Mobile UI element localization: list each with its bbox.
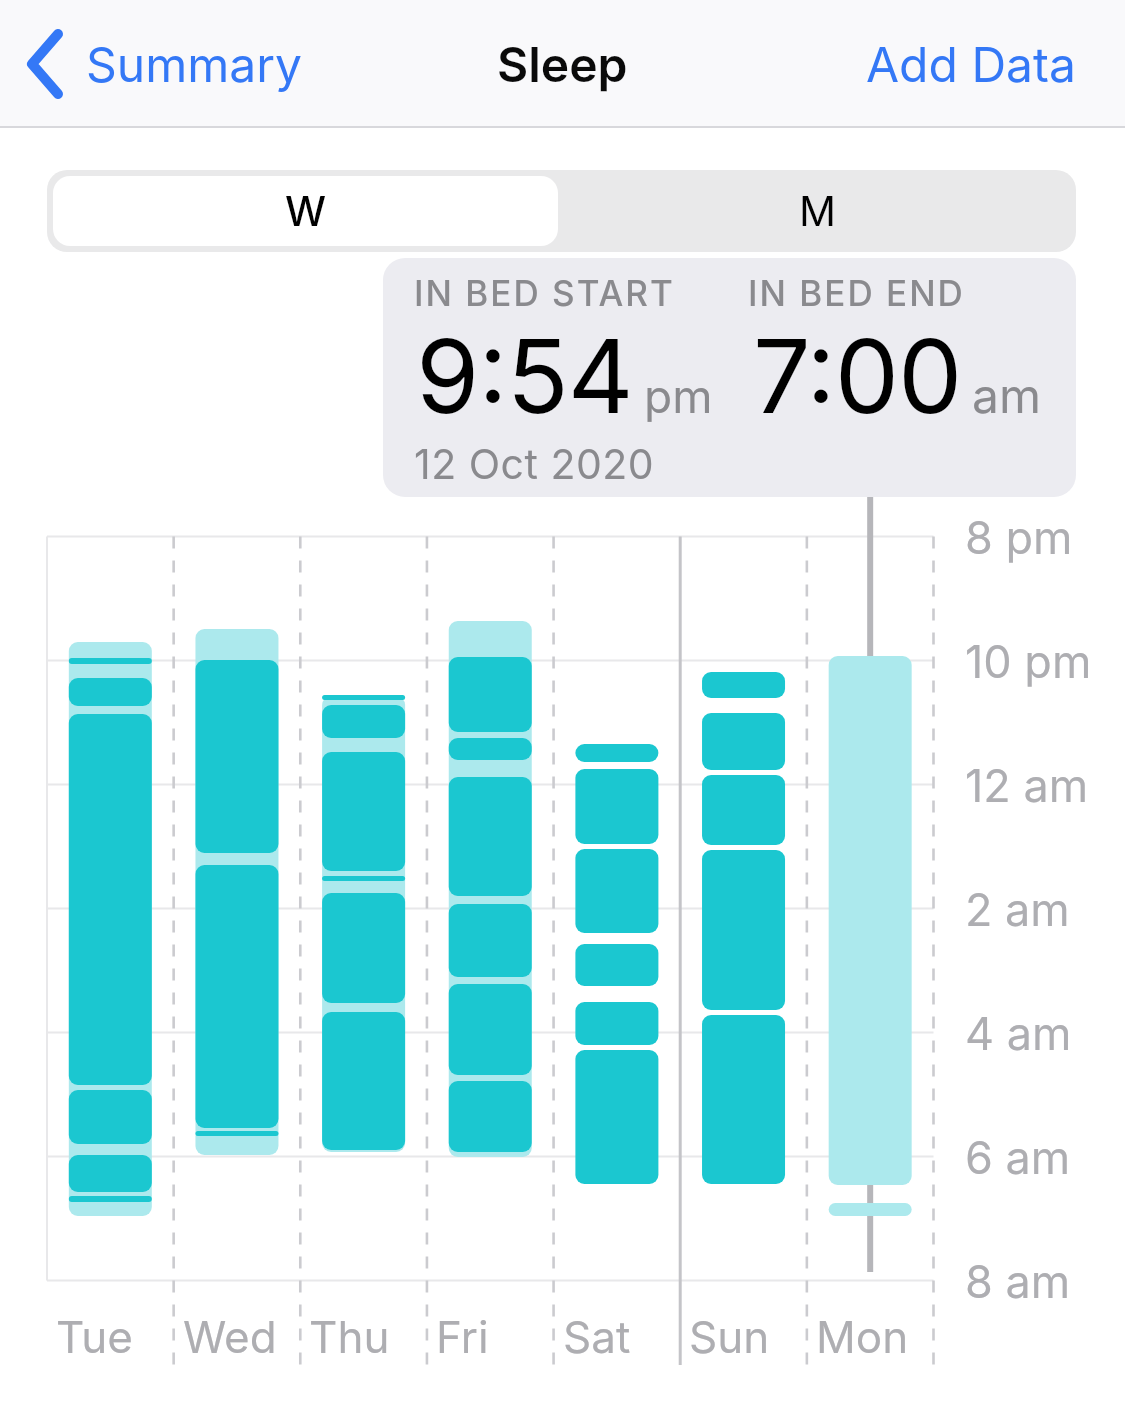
staticText: 8 am [965, 1254, 1071, 1308]
staticText: Sat [563, 1310, 631, 1363]
staticText: Sleep [497, 35, 628, 93]
staticText: M [799, 186, 837, 236]
button[interactable]: Add Data [866, 35, 1076, 93]
staticText: Wed [183, 1310, 277, 1363]
staticText: Tue [56, 1310, 133, 1363]
staticText: 4 am [965, 1006, 1072, 1060]
staticText: W [285, 186, 327, 236]
staticText: IN BED START [414, 272, 675, 314]
staticText: 8 pm [965, 510, 1073, 564]
staticText: 9:54 [416, 314, 633, 437]
staticText: Thu [309, 1310, 390, 1363]
staticText: pm [644, 368, 713, 424]
staticText: 6 am [965, 1130, 1071, 1184]
staticText: 2 am [965, 882, 1070, 936]
staticText: am [972, 366, 1041, 424]
button[interactable]: M [560, 170, 1076, 252]
staticText: 12 am [965, 758, 1089, 812]
button[interactable]: Summary [24, 26, 314, 102]
staticText: Summary [86, 35, 303, 93]
staticText: 7:00 [753, 314, 962, 437]
staticText: 12 Oct 2020 [414, 439, 655, 489]
button[interactable]: W [53, 176, 558, 246]
staticText: Sun [689, 1310, 770, 1363]
staticText: IN BED END [748, 272, 965, 314]
staticText: 10 pm [965, 634, 1092, 688]
staticText: Add Data [866, 35, 1076, 93]
staticText: Fri [436, 1310, 489, 1363]
staticText: Mon [816, 1310, 909, 1363]
